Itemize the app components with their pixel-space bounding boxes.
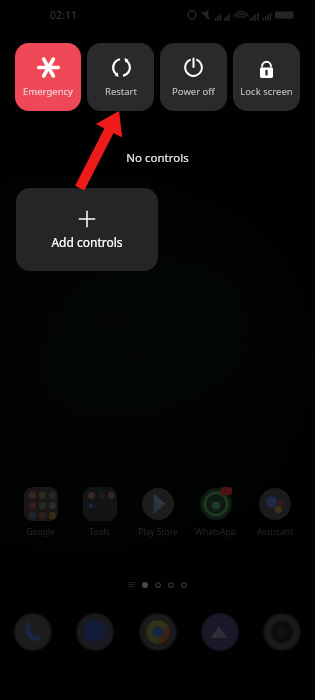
button[interactable]: Emergency xyxy=(15,43,81,111)
button[interactable]: Restart xyxy=(87,43,154,111)
staticText: Play Store xyxy=(138,526,178,538)
button[interactable]: App xyxy=(139,613,177,651)
button[interactable]: Google xyxy=(13,487,68,538)
staticText: Google xyxy=(26,526,55,538)
button[interactable]: Power off xyxy=(160,43,227,111)
staticText: Assistant xyxy=(257,526,293,538)
staticText: Restart xyxy=(105,85,137,98)
staticText: Tools xyxy=(89,526,110,538)
staticText: Power off xyxy=(172,85,215,98)
button[interactable]: App xyxy=(76,613,114,651)
button[interactable]: WhatsApp xyxy=(188,487,243,538)
button[interactable]: Assistant xyxy=(247,487,302,538)
staticText: Lock screen xyxy=(240,85,293,98)
button[interactable]: Add controls xyxy=(16,188,158,271)
button[interactable]: Tools xyxy=(72,487,127,538)
button[interactable]: Play Store xyxy=(130,487,185,538)
staticText: 02:11 xyxy=(50,8,77,22)
staticText: WhatsApp xyxy=(195,526,236,538)
staticText: Add controls xyxy=(51,234,123,250)
button[interactable]: App xyxy=(14,613,52,651)
staticText: No controls xyxy=(126,150,189,166)
button[interactable]: App xyxy=(263,613,301,651)
button[interactable]: Lock screen xyxy=(233,43,300,111)
staticText: Emergency xyxy=(23,85,73,98)
button[interactable]: App xyxy=(201,613,239,651)
